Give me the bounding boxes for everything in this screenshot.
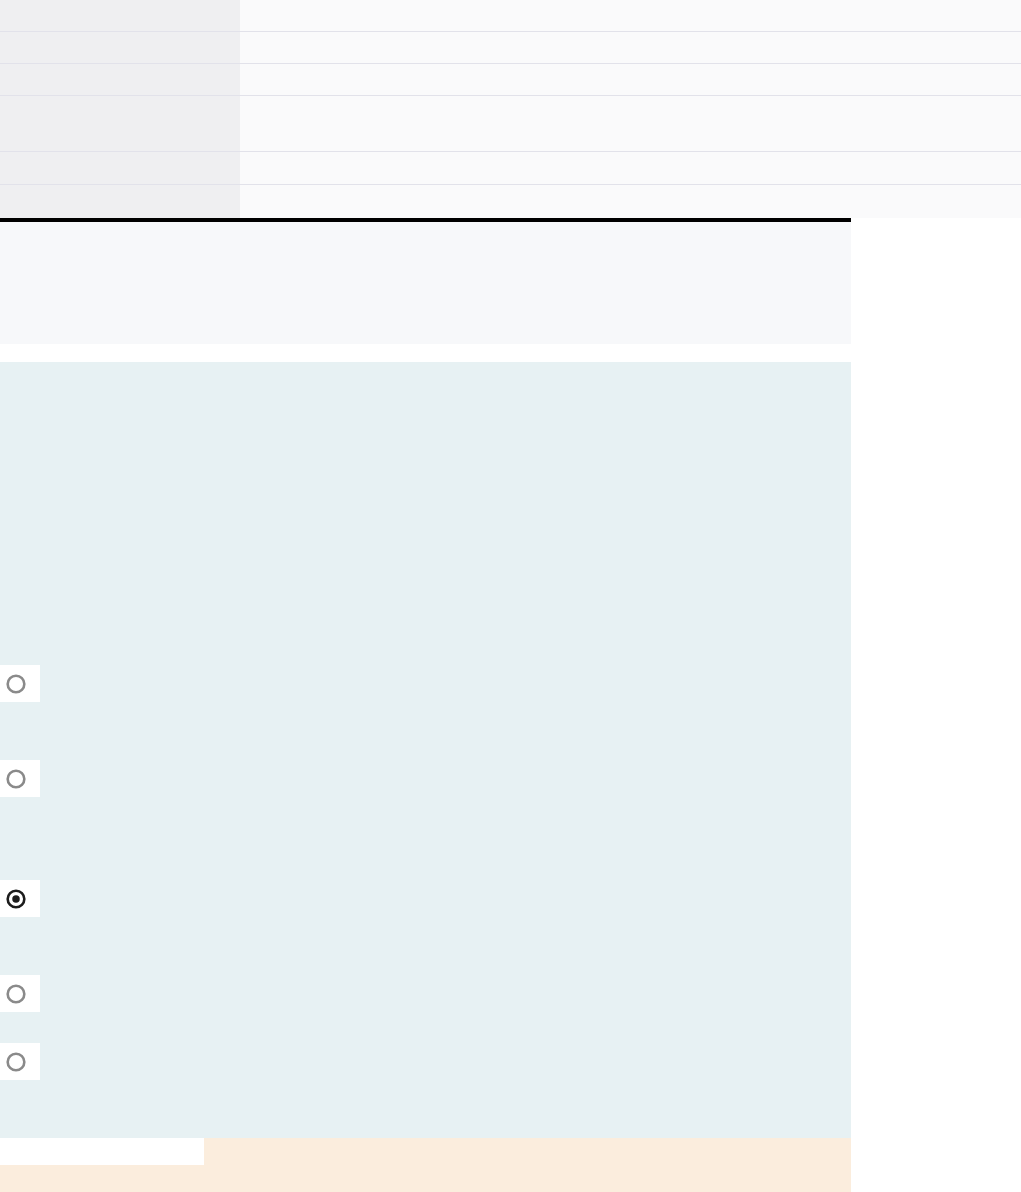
button[interactable]: Option 5	[0, 1043, 40, 1080]
button[interactable]: Option 3, selected	[0, 880, 40, 917]
button[interactable]: Option 1	[0, 665, 40, 702]
button[interactable]: Option 2	[0, 760, 40, 797]
button[interactable]: Option 4	[0, 975, 40, 1012]
